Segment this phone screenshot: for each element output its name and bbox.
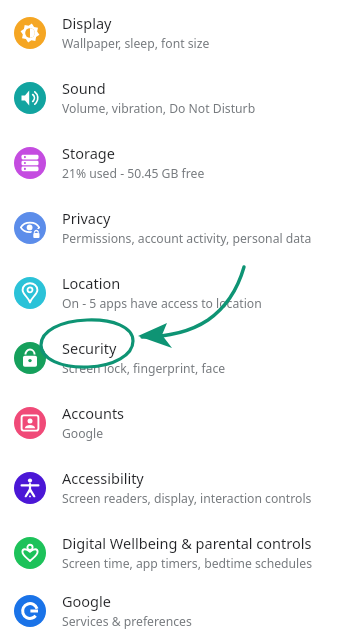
staticText: Display — [62, 13, 112, 33]
staticText: Digital Wellbeing & parental controls — [62, 533, 312, 553]
button[interactable]: Display — [0, 0, 360, 65]
staticText: Wallpaper, sleep, font size — [62, 35, 210, 52]
button[interactable]: Security — [0, 325, 360, 390]
staticText: Volume, vibration, Do Not Disturb — [62, 100, 256, 117]
button[interactable]: Sound — [0, 65, 360, 130]
staticText: Accounts — [62, 403, 125, 423]
staticText: Services & preferences — [62, 613, 192, 630]
staticText: Permissions, account activity, personal … — [62, 230, 312, 247]
button[interactable]: Digital Wellbeing & parental controls — [0, 520, 360, 585]
staticText: Storage — [62, 143, 115, 163]
staticText: Accessibility — [62, 468, 144, 488]
staticText: Security — [62, 338, 117, 358]
staticText: Google — [62, 425, 104, 442]
staticText: Screen time, app timers, bedtime schedul… — [62, 555, 312, 572]
staticText: Screen lock, fingerprint, face — [62, 360, 226, 377]
staticText: Location — [62, 273, 121, 293]
staticText: Privacy — [62, 208, 111, 228]
button[interactable]: Accounts — [0, 390, 360, 455]
staticText: On - 5 apps have access to location — [62, 295, 262, 312]
staticText: Sound — [62, 78, 106, 98]
staticText: Screen readers, display, interaction con… — [62, 490, 312, 507]
staticText: 21% used - 50.45 GB free — [62, 165, 205, 182]
button[interactable]: Google — [0, 585, 360, 636]
button[interactable]: Accessibility — [0, 455, 360, 520]
button[interactable]: Location — [0, 260, 360, 325]
staticText: Google — [62, 591, 111, 611]
button[interactable]: Storage — [0, 130, 360, 195]
button[interactable]: Privacy — [0, 195, 360, 260]
